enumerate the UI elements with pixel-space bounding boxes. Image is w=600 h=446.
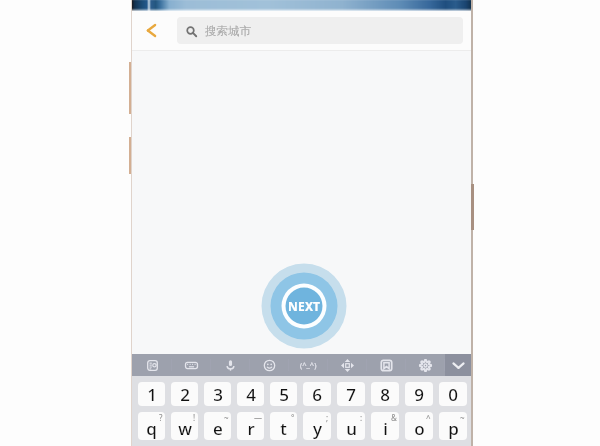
button[interactable]: q: [138, 412, 165, 440]
button[interactable]: w: [171, 412, 198, 440]
staticText: r: [247, 417, 255, 440]
button[interactable]: i: [371, 412, 399, 440]
staticText: !: [193, 412, 196, 423]
button[interactable]: Settings: [406, 354, 445, 376]
staticText: ;: [326, 412, 329, 423]
staticText: 6: [312, 383, 322, 406]
staticText: i: [383, 417, 388, 440]
staticText: —: [254, 412, 262, 423]
button[interactable]: 0: [439, 382, 467, 406]
button[interactable]: Save: [367, 354, 406, 376]
staticText: o: [414, 417, 425, 440]
button[interactable]: 7: [337, 382, 365, 406]
button[interactable]: Next: [258, 260, 350, 352]
button[interactable]: 2: [171, 382, 198, 406]
staticText: 8: [380, 383, 390, 406]
staticText: NEXT: [288, 298, 321, 314]
staticText: ~: [460, 412, 465, 423]
staticText: y: [313, 417, 322, 440]
button[interactable]: 6: [303, 382, 331, 406]
button[interactable]: 1: [138, 382, 165, 406]
staticText: ?: [159, 412, 163, 423]
button[interactable]: 3: [204, 382, 231, 406]
button[interactable]: 5: [270, 382, 297, 406]
staticText: 2: [180, 383, 190, 406]
button[interactable]: y: [303, 412, 331, 440]
button[interactable]: e: [204, 412, 231, 440]
button[interactable]: Voice input: [211, 354, 250, 376]
staticText: p: [448, 417, 459, 440]
staticText: :: [360, 412, 363, 423]
button[interactable]: r: [237, 412, 264, 440]
staticText: e: [213, 417, 223, 440]
staticText: (^_^): [300, 360, 317, 370]
staticText: 0: [448, 383, 458, 406]
staticText: u: [346, 417, 357, 440]
button[interactable]: Clipboard: [132, 354, 172, 376]
button[interactable]: u: [337, 412, 365, 440]
staticText: 3: [213, 383, 223, 406]
button[interactable]: Back: [132, 11, 171, 50]
staticText: 1: [147, 383, 157, 406]
staticText: &: [391, 412, 397, 423]
staticText: ^: [426, 412, 431, 423]
staticText: 7: [346, 383, 356, 406]
button[interactable]: o: [405, 412, 433, 440]
button[interactable]: Keyboard layout: [172, 354, 211, 376]
staticText: t: [280, 417, 287, 440]
button[interactable]: 搜索城市: [177, 17, 463, 44]
button[interactable]: Stickers: [289, 354, 328, 376]
button[interactable]: 4: [237, 382, 264, 406]
button[interactable]: Hide keyboard: [445, 354, 471, 376]
staticText: ~: [224, 412, 229, 423]
staticText: 4: [246, 383, 256, 406]
staticText: q: [146, 417, 157, 440]
button[interactable]: t: [270, 412, 297, 440]
button[interactable]: p: [439, 412, 467, 440]
staticText: w: [178, 417, 192, 440]
staticText: 5: [279, 383, 289, 406]
button[interactable]: 8: [371, 382, 399, 406]
button[interactable]: Emoji: [250, 354, 289, 376]
button[interactable]: Move keyboard: [328, 354, 367, 376]
staticText: 9: [414, 383, 424, 406]
staticText: 搜索城市: [205, 24, 251, 38]
staticText: °: [291, 412, 295, 423]
button[interactable]: 9: [405, 382, 433, 406]
